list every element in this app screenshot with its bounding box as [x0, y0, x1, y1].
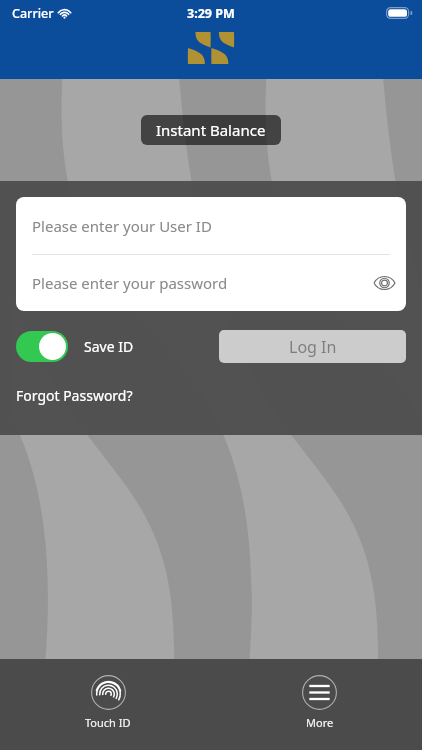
button[interactable]: Please enter your User ID	[16, 197, 406, 254]
staticText: Please enter your password	[32, 273, 228, 293]
staticText: 3:29 PM	[187, 5, 235, 22]
button[interactable]: Log In	[219, 330, 406, 363]
button[interactable]: Please enter your password	[16, 255, 406, 311]
button[interactable]: More	[216, 659, 422, 750]
button[interactable]: Instant Balance	[141, 115, 281, 145]
button[interactable]: Touch ID	[0, 659, 216, 750]
button[interactable]: Show password	[362, 261, 406, 305]
staticText: Please enter your User ID	[32, 216, 212, 236]
button[interactable]: Save ID	[16, 331, 68, 362]
staticText: Save ID	[84, 337, 134, 356]
staticText: Carrier	[12, 5, 54, 22]
staticText: Touch ID	[85, 715, 131, 730]
staticText: Forgot Password?	[16, 386, 133, 405]
staticText: Instant Balance	[156, 120, 266, 140]
staticText: More	[306, 715, 334, 730]
button[interactable]: Forgot Password?	[16, 386, 133, 405]
staticText: Log In	[289, 336, 337, 358]
